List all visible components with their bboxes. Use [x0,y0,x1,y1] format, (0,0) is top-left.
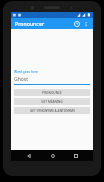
button[interactable]: GET MEANING [14,98,90,105]
staticText: Ghost [14,76,28,83]
button[interactable]: Recent apps [70,150,81,161]
button[interactable]: Ghost [14,76,90,85]
staticText: Word goes here [14,70,38,74]
staticText: Pronouncer [15,20,45,27]
button[interactable]: More options [82,20,90,28]
staticText: GET SYNONYMS & ANTONYMS [30,109,75,113]
button[interactable]: Back [23,150,34,161]
staticText: PRONOUNCE [42,91,62,95]
staticText: GET MEANING [41,100,63,104]
button[interactable]: Home [47,150,58,161]
button[interactable]: PRONOUNCE [14,89,90,96]
button[interactable]: History [72,19,82,29]
button[interactable]: GET SYNONYMS & ANTONYMS [14,107,90,114]
